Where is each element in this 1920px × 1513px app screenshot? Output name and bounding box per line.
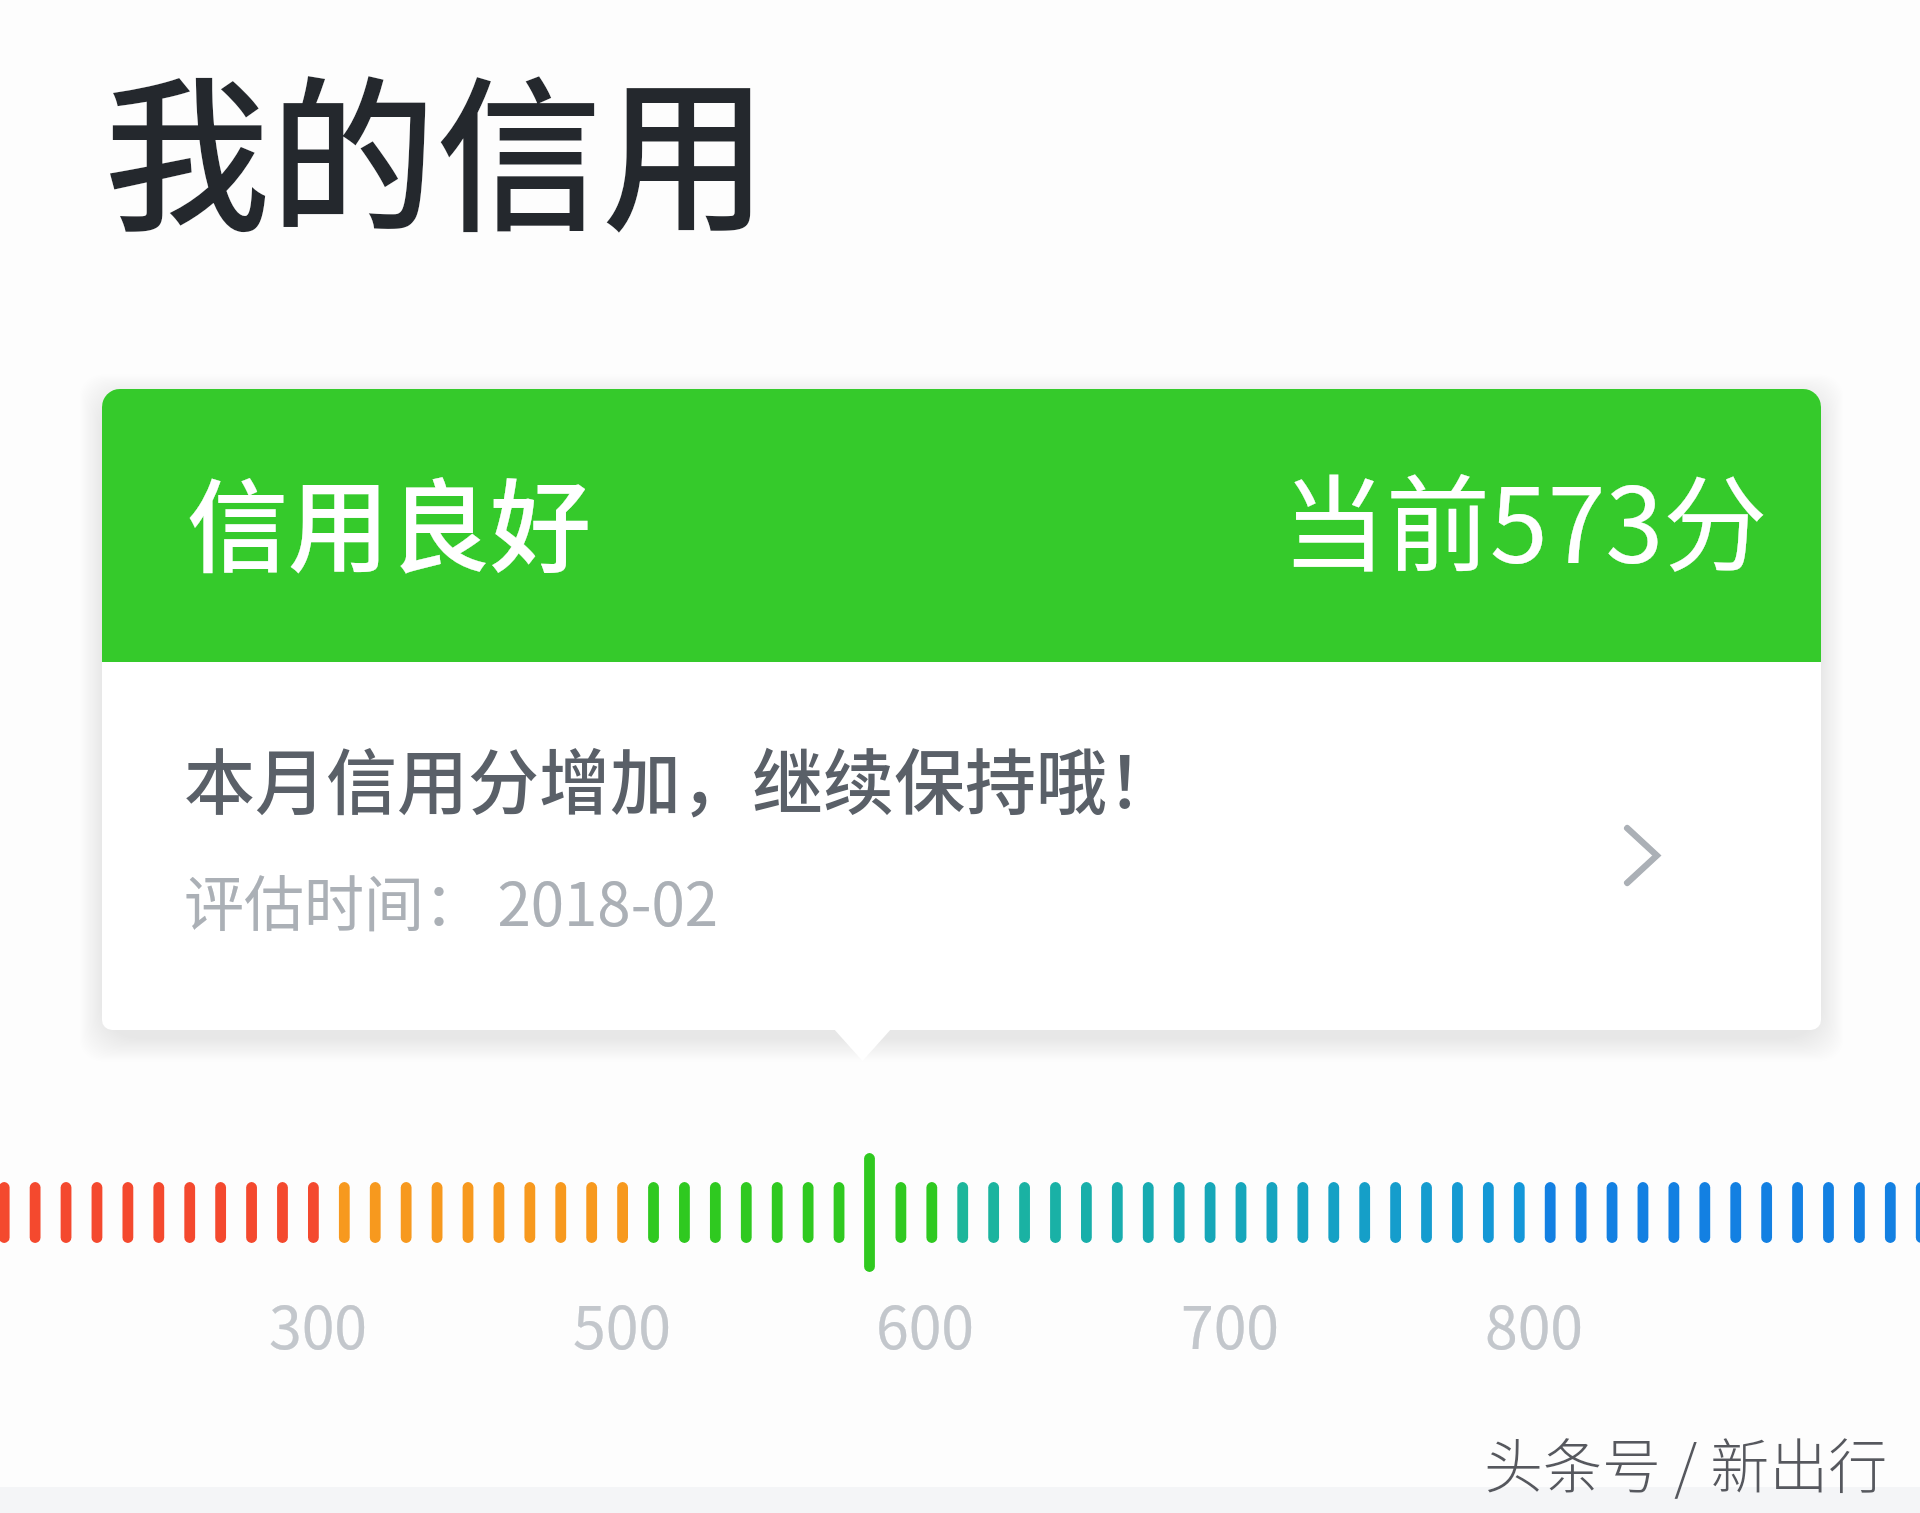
- staticText: 当前573分: [1282, 442, 1768, 593]
- staticText: 700: [1140, 1281, 1320, 1366]
- staticText: 500: [532, 1281, 712, 1366]
- staticText: 本月信用分增加，继续保持哦！: [184, 726, 1179, 829]
- staticText: 300: [228, 1281, 408, 1366]
- button[interactable]: 信用良好: [102, 389, 1821, 1030]
- staticText: 评估时间： 2018-02: [184, 856, 719, 943]
- staticText: 信用良好: [187, 447, 592, 593]
- staticText: 头条号 / 新出行: [1484, 1420, 1888, 1505]
- staticText: 800: [1444, 1281, 1624, 1366]
- staticText: 我的信用: [104, 24, 768, 264]
- button[interactable]: 查看详情: [1582, 795, 1702, 915]
- staticText: 600: [835, 1281, 1015, 1366]
